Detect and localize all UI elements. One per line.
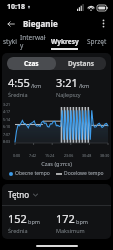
staticText: 0:00 xyxy=(13,153,21,158)
staticText: Sprzęt xyxy=(87,37,107,46)
button[interactable]: styki xyxy=(0,33,20,50)
staticText: Czas (g:m:s) xyxy=(2,160,111,167)
staticText: 172 xyxy=(56,211,75,226)
staticText: 6:10 xyxy=(3,124,11,129)
staticText: /km xyxy=(79,82,90,89)
button[interactable]: More options xyxy=(96,16,111,31)
staticText: Obecne tempo xyxy=(15,170,50,177)
staticText: Wykresy xyxy=(51,37,79,46)
staticText: Maksimum xyxy=(56,227,85,234)
staticText: Najlepszy xyxy=(56,91,81,98)
staticText: 38:30 xyxy=(100,153,110,158)
staticText: 3:21 xyxy=(56,75,78,90)
staticText: Docelowe tempo xyxy=(64,170,104,177)
button[interactable]: Back xyxy=(3,16,18,31)
staticText: 4:17 xyxy=(3,109,11,114)
staticText: 30:48 xyxy=(82,153,92,158)
button[interactable]: Tętno xyxy=(8,189,38,200)
staticText: Średnia xyxy=(8,227,28,234)
staticText: Bieganie xyxy=(23,18,58,29)
staticText: Interwały xyxy=(20,33,48,50)
staticText: Dystans xyxy=(68,59,94,68)
staticText: 10:18 xyxy=(7,2,25,12)
staticText: 8:03 xyxy=(3,139,11,144)
staticText: Tętno xyxy=(8,189,30,200)
staticText: Średnia xyxy=(8,91,28,98)
staticText: 3:21 xyxy=(3,102,11,107)
staticText: bpm xyxy=(76,218,88,225)
staticText: 7:42 xyxy=(29,153,37,158)
staticText: 5:14 xyxy=(3,117,11,122)
staticText: 4:55 xyxy=(8,75,30,90)
staticText: 15:24 xyxy=(45,153,55,158)
staticText: /km xyxy=(31,82,42,89)
staticText: styki xyxy=(3,37,17,46)
staticText: Czas xyxy=(24,59,39,68)
staticText: bpm xyxy=(28,218,40,225)
staticText: 23:06 xyxy=(64,153,74,158)
button[interactable]: Interwały xyxy=(20,33,48,50)
button[interactable]: Sprzęt xyxy=(81,33,113,50)
button[interactable]: Wykresy xyxy=(48,33,81,50)
staticText: 152 xyxy=(8,211,27,226)
button[interactable]: Czas xyxy=(7,57,56,70)
staticText: 7:07 xyxy=(3,132,11,137)
button[interactable]: Dystans xyxy=(56,57,106,70)
